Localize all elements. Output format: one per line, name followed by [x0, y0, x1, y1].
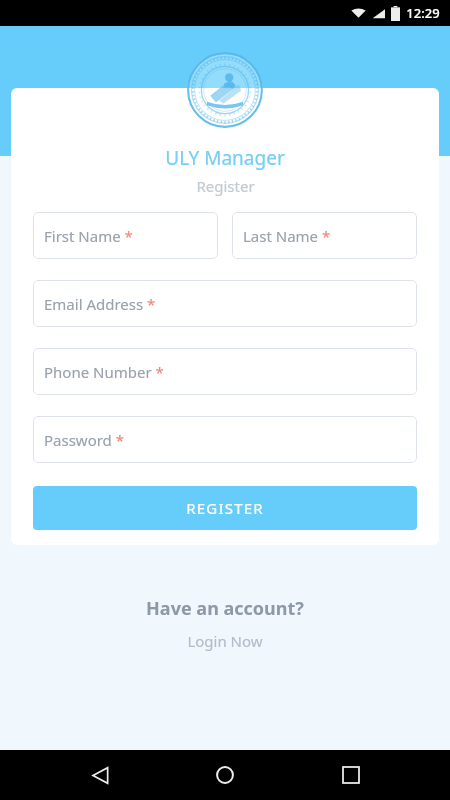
button[interactable]: REGISTER [33, 486, 417, 530]
staticText: 12:29 [406, 4, 440, 22]
button[interactable]: First Name * [33, 212, 218, 259]
button[interactable]: Email Address * [33, 280, 417, 327]
staticText: Login Now [187, 631, 263, 651]
button[interactable]: Login Now [177, 628, 273, 654]
staticText: Password * [44, 430, 125, 450]
staticText: Last Name * [243, 226, 331, 246]
button[interactable]: Back [74, 750, 126, 800]
staticText: Register [196, 176, 255, 196]
staticText: ULY Manager [165, 145, 285, 171]
other: ULY Manager logo [187, 52, 263, 128]
button[interactable]: Recent apps [325, 750, 377, 800]
staticText: Email Address * [44, 294, 156, 314]
button[interactable]: Phone Number * [33, 348, 417, 395]
button[interactable]: Last Name * [232, 212, 417, 259]
button[interactable]: Home [199, 750, 251, 800]
staticText: Phone Number * [44, 362, 164, 382]
button[interactable]: Password * [33, 416, 417, 463]
staticText: First Name * [44, 226, 133, 246]
staticText: REGISTER [186, 498, 264, 518]
staticText: Have an account? [146, 596, 304, 621]
